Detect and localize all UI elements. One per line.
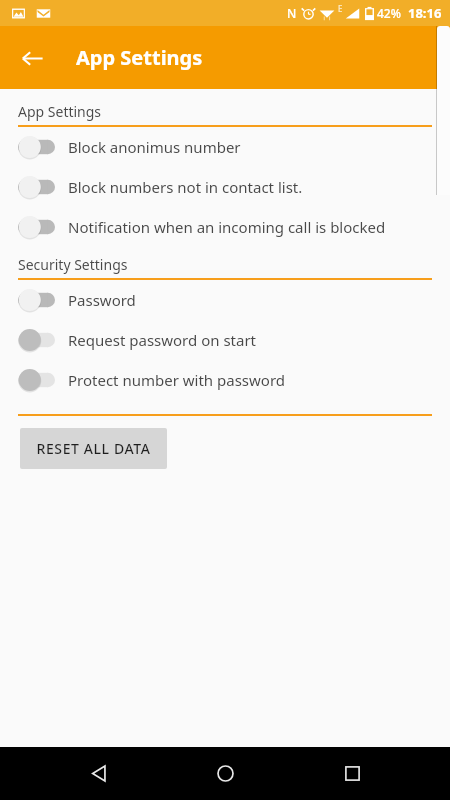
staticText: 42% [377, 5, 401, 21]
button[interactable]: Notification when an incoming call is bl… [0, 207, 450, 247]
button[interactable]: Home [197, 747, 253, 800]
staticText: App Settings [18, 102, 102, 121]
staticText: RESET ALL DATA [36, 439, 151, 458]
staticText: N [287, 5, 297, 21]
staticText: Block anonimus number [68, 137, 241, 157]
staticText: Notification when an incoming call is bl… [68, 217, 386, 237]
button[interactable]: Request password on start [0, 320, 450, 360]
button[interactable]: Block numbers not in contact list. [0, 167, 450, 207]
button[interactable]: Password [0, 280, 450, 320]
button[interactable]: Protect number with password [0, 360, 450, 400]
staticText: E [338, 3, 343, 14]
staticText: Block numbers not in contact list. [68, 177, 303, 197]
button[interactable]: Block anonimus number [0, 127, 450, 167]
staticText: App Settings [76, 44, 203, 71]
staticText: Security Settings [18, 255, 128, 274]
staticText: 18:16 [408, 4, 442, 22]
button[interactable]: Back [8, 34, 56, 82]
staticText: Request password on start [68, 330, 257, 350]
staticText: Password [68, 290, 136, 310]
button[interactable]: Recent apps [324, 747, 380, 800]
button[interactable]: RESET ALL DATA [20, 428, 167, 469]
button[interactable]: Back [71, 747, 127, 800]
staticText: Protect number with password [68, 370, 286, 390]
